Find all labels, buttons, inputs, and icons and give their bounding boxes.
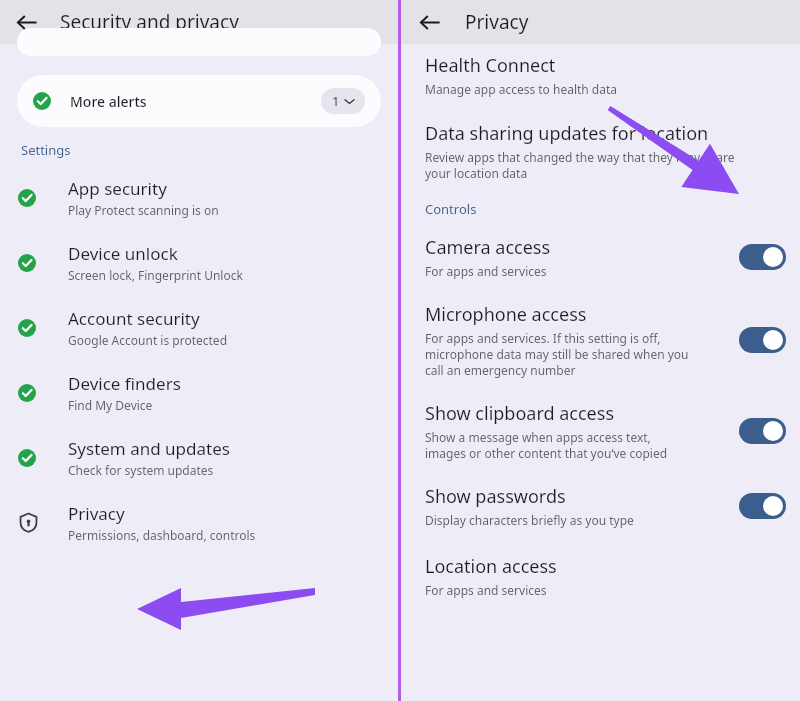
staticText: Permissions, dashboard, controls bbox=[68, 527, 256, 543]
button[interactable]: Show passwords bbox=[401, 479, 800, 533]
button[interactable]: More alerts bbox=[17, 75, 381, 127]
button[interactable]: Toggle on bbox=[739, 327, 786, 353]
staticText: Find My Device bbox=[68, 397, 153, 413]
staticText: For apps and services. If this setting i… bbox=[425, 330, 661, 346]
button[interactable]: Camera access bbox=[401, 230, 800, 284]
staticText: images or other content that you‘ve copi… bbox=[425, 445, 668, 461]
staticText: Privacy bbox=[68, 502, 125, 525]
button[interactable]: Device finders bbox=[0, 366, 398, 419]
button[interactable]: Back bbox=[409, 2, 449, 42]
staticText: More alerts bbox=[70, 92, 147, 111]
button[interactable]: Toggle on bbox=[739, 244, 786, 270]
staticText: 1 bbox=[332, 92, 340, 110]
staticText: Display characters briefly as you type bbox=[425, 512, 634, 528]
staticText: Account security bbox=[68, 307, 200, 330]
staticText: For apps and services bbox=[425, 263, 547, 279]
button[interactable]: System and updates bbox=[0, 431, 398, 484]
staticText: Settings bbox=[21, 141, 71, 159]
button[interactable]: Back bbox=[6, 2, 46, 42]
staticText: Show clipboard access bbox=[425, 401, 615, 426]
staticText: microphone data may still be shared when… bbox=[425, 346, 689, 362]
staticText: Check for system updates bbox=[68, 462, 214, 478]
staticText: Location access bbox=[425, 554, 557, 579]
button[interactable]: Account security bbox=[0, 301, 398, 354]
button[interactable]: Location access bbox=[401, 549, 800, 603]
staticText: Microphone access bbox=[425, 302, 587, 327]
staticText: For apps and services bbox=[425, 582, 547, 598]
staticText: Show passwords bbox=[425, 484, 566, 509]
button[interactable]: App security bbox=[0, 171, 398, 224]
staticText: Device unlock bbox=[68, 242, 178, 265]
staticText: Show a message when apps access text, bbox=[425, 429, 651, 445]
staticText: App security bbox=[68, 177, 167, 200]
button[interactable]: Microphone access bbox=[401, 297, 800, 383]
button[interactable]: Privacy bbox=[0, 496, 398, 549]
staticText: Review apps that changed the way that th… bbox=[425, 149, 735, 165]
staticText: Manage app access to health data bbox=[425, 81, 618, 97]
staticText: Device finders bbox=[68, 372, 181, 395]
button[interactable]: 1 bbox=[321, 88, 365, 114]
staticText: Controls bbox=[425, 200, 477, 218]
staticText: Play Protect scanning is on bbox=[68, 202, 219, 218]
staticText: Health Connect bbox=[425, 53, 556, 78]
staticText: System and updates bbox=[68, 437, 230, 460]
button[interactable]: Toggle on bbox=[739, 493, 786, 519]
staticText: your location data bbox=[425, 165, 528, 181]
staticText: Privacy bbox=[465, 9, 529, 35]
button[interactable]: Toggle on bbox=[739, 418, 786, 444]
button[interactable]: Health Connect bbox=[401, 48, 800, 102]
staticText: Data sharing updates for location bbox=[425, 121, 709, 146]
staticText: Security and privacy bbox=[60, 9, 239, 35]
staticText: Screen lock, Fingerprint Unlock bbox=[68, 267, 243, 283]
button[interactable]: Show clipboard access bbox=[401, 396, 800, 466]
staticText: call an emergency number bbox=[425, 362, 576, 378]
button[interactable]: Device unlock bbox=[0, 236, 398, 289]
staticText: Camera access bbox=[425, 235, 551, 260]
button[interactable]: Data sharing updates for location bbox=[401, 116, 800, 186]
staticText: Google Account is protected bbox=[68, 332, 228, 348]
